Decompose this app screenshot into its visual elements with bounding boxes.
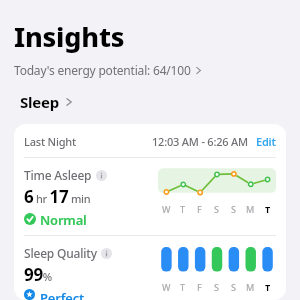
other: Weekly time asleep chart [158,167,276,201]
staticText: Sleep [20,92,60,112]
staticText: Today's energy potential: 64/100 [14,62,191,78]
staticText: Time Asleep [24,167,92,183]
button[interactable]: Sleep [20,92,73,112]
staticText: W [162,281,171,293]
button[interactable]: Edit [256,134,276,149]
staticText: 99% [24,263,52,286]
staticText: 12:03 AM - 6:26 AM [152,134,249,149]
staticText: M [246,203,255,215]
staticText: S [214,281,219,293]
staticText: Normal [40,211,87,227]
staticText: T [265,203,270,215]
other: Weekly sleep quality chart [158,245,276,279]
staticText: 6 hr 17 min [24,185,91,208]
staticText: F [197,203,202,215]
button[interactable]: Last Night [14,124,286,300]
staticText: S [214,203,219,215]
staticText: Last Night [24,134,77,149]
staticText: F [197,281,202,293]
staticText: W [162,203,171,215]
staticText: Insights [14,18,125,55]
staticText: S [231,281,236,293]
staticText: T [180,281,185,293]
staticText: Edit [256,134,276,149]
staticText: S [231,203,236,215]
button[interactable]: Today's energy potential: 64/100 [14,61,202,79]
staticText: T [180,203,185,215]
staticText: Sleep Quality [24,245,97,261]
staticText: T [265,281,270,293]
staticText: M [246,281,255,293]
staticText: Perfect [40,289,85,300]
